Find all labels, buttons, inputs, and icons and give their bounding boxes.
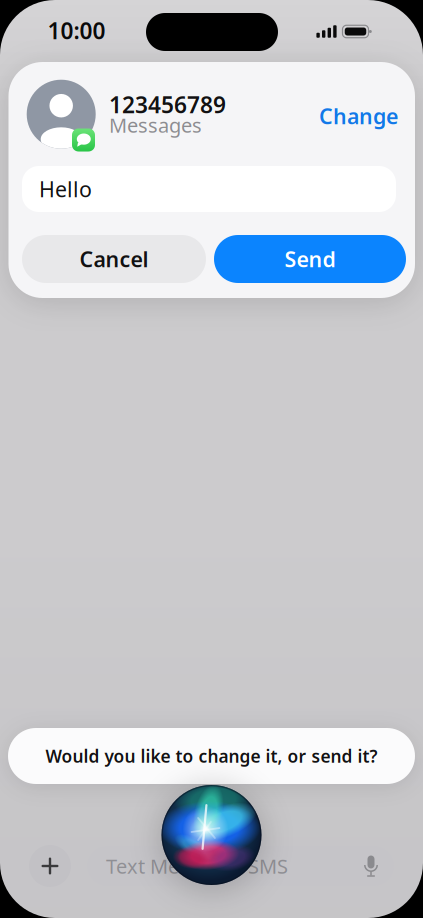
- staticText: Send: [284, 245, 335, 273]
- staticText: Messages: [109, 112, 202, 138]
- staticText: Would you like to change it, or send it?: [45, 744, 377, 767]
- staticText: 10:00: [47, 15, 105, 45]
- staticText: Hello: [39, 175, 92, 203]
- staticText: Text Message · SMS: [106, 853, 288, 879]
- staticText: Change: [319, 102, 398, 130]
- staticText: 123456789: [109, 89, 226, 119]
- button[interactable]: Change: [248, 102, 398, 130]
- staticText: Cancel: [79, 245, 148, 273]
- button[interactable]: Cancel: [22, 235, 206, 283]
- button[interactable]: Send: [214, 235, 406, 283]
- button[interactable]: Text Message SMS input: [87, 846, 394, 886]
- button[interactable]: Add attachment: [29, 845, 71, 887]
- button[interactable]: Message text: Hello: [22, 166, 396, 212]
